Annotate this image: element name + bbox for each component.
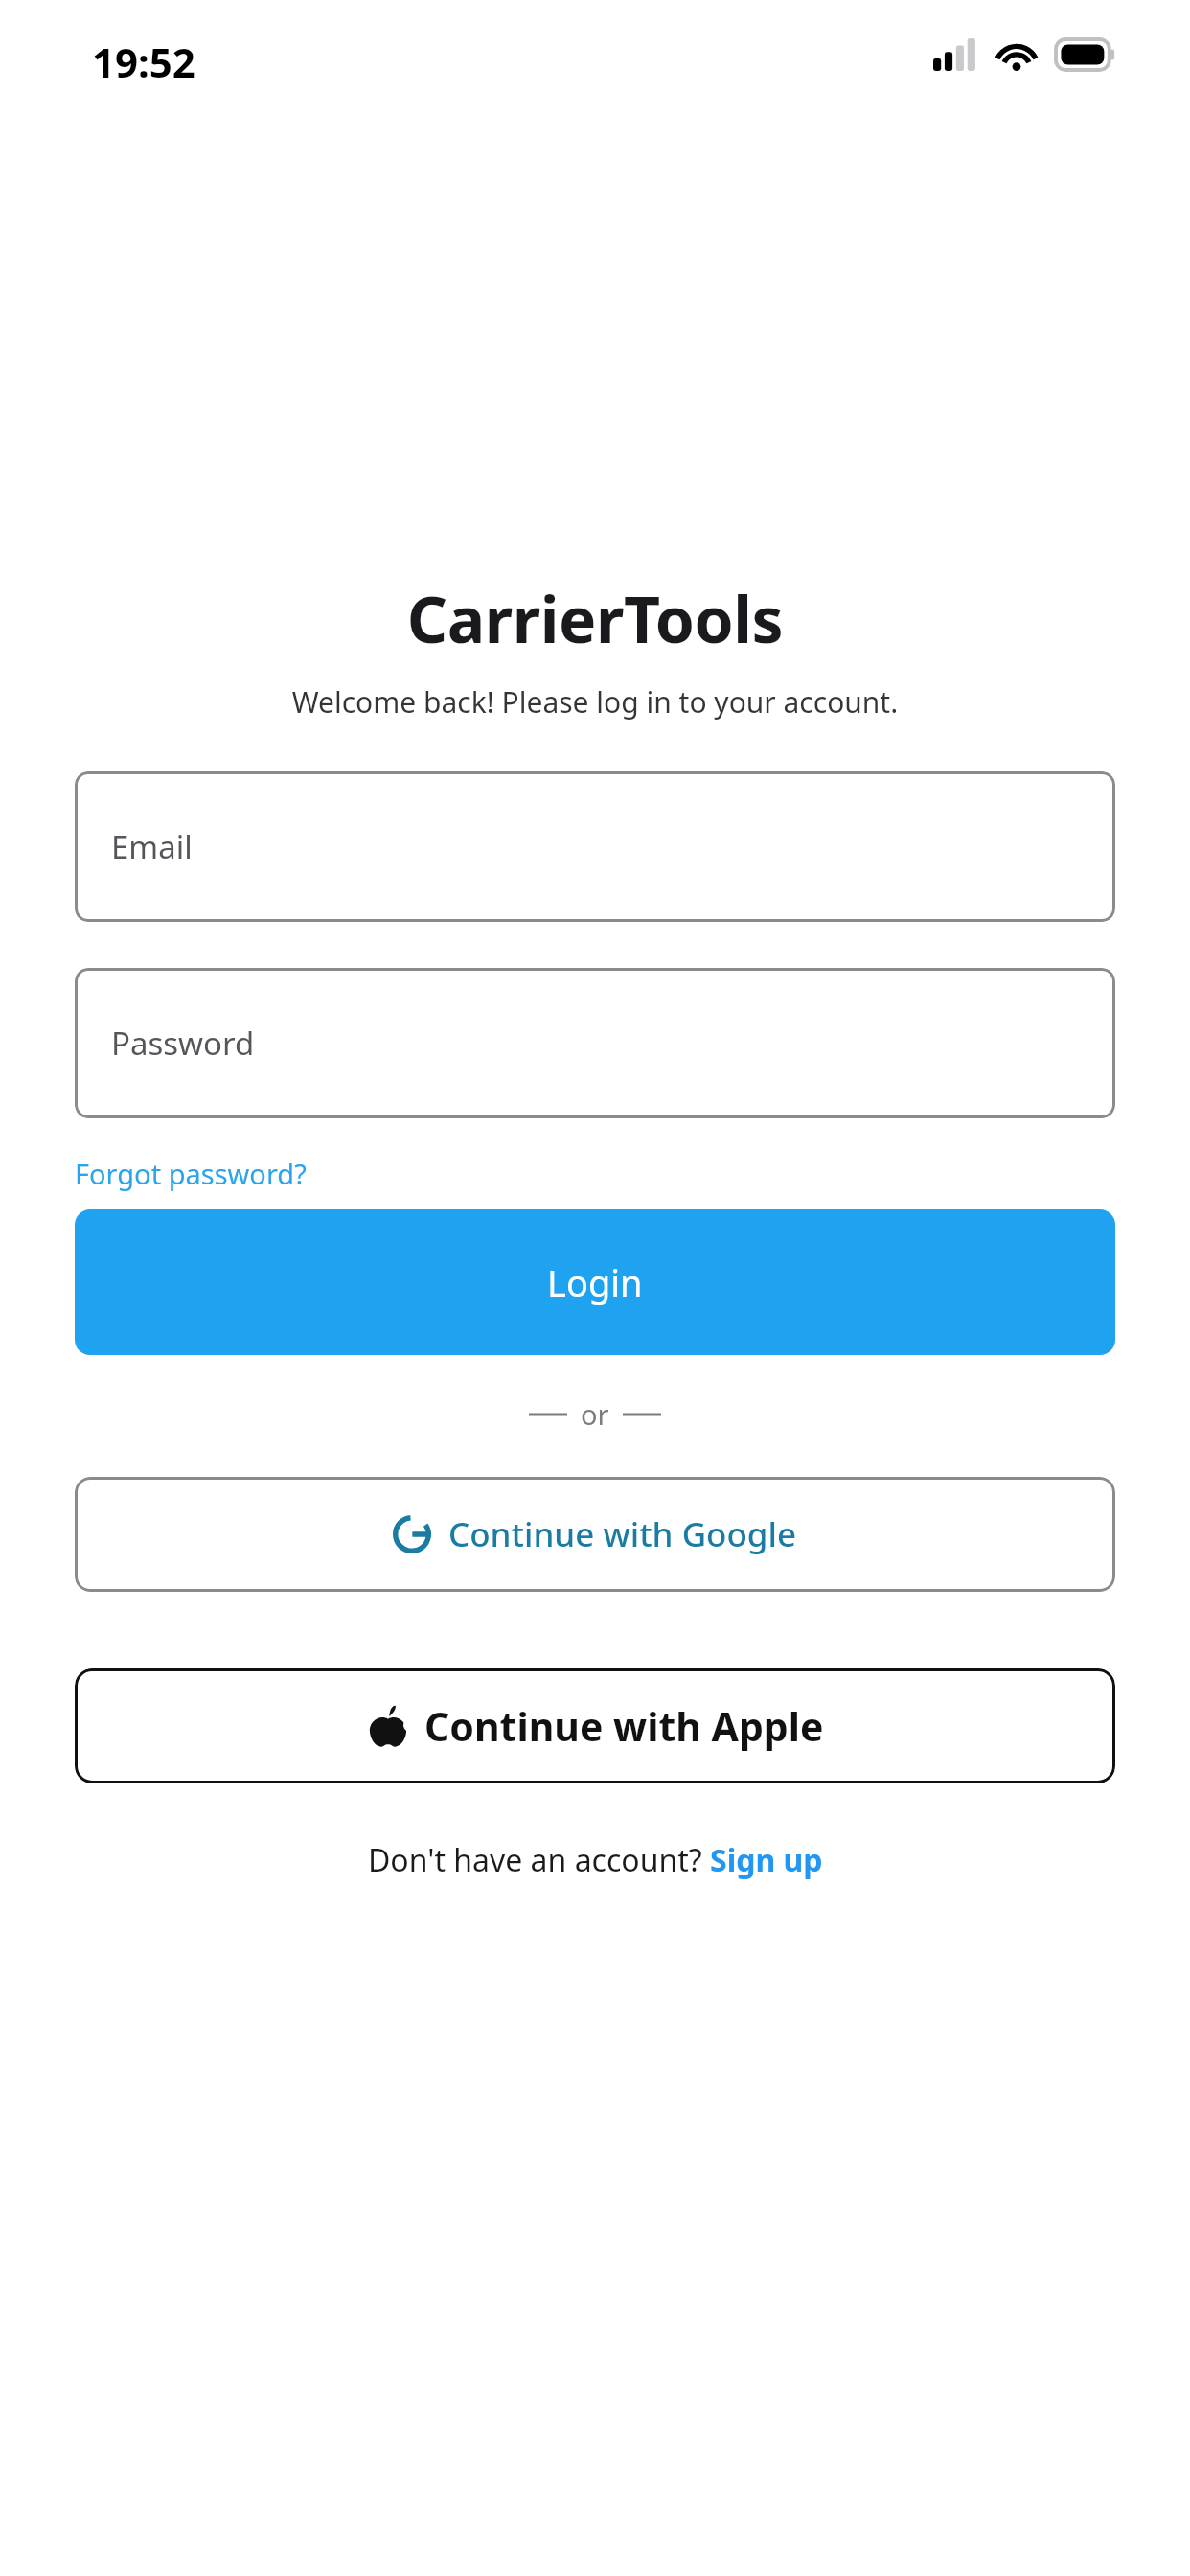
button[interactable]: Continue with Google <box>75 1477 1115 1592</box>
staticText: Don't have an account? <box>368 1839 710 1881</box>
button[interactable]: Email <box>75 771 1115 922</box>
staticText: Password <box>111 1022 255 1065</box>
staticText: Sign up <box>710 1839 823 1881</box>
staticText: Continue with Google <box>448 1511 797 1557</box>
staticText: Continue with Apple <box>424 1699 824 1753</box>
staticText: Welcome back! Please log in to your acco… <box>0 682 1190 722</box>
staticText: 19:52 <box>92 34 195 89</box>
button[interactable]: Password <box>75 968 1115 1118</box>
staticText: Login <box>547 1257 643 1307</box>
button[interactable]: Forgot password? <box>75 1153 307 1194</box>
staticText: Email <box>111 825 193 868</box>
staticText: or <box>581 1395 609 1433</box>
staticText: Forgot password? <box>75 1155 307 1192</box>
staticText: CarrierTools <box>0 575 1190 661</box>
button[interactable]: Login <box>75 1209 1115 1355</box>
button[interactable]: Sign up <box>710 1839 823 1881</box>
button[interactable]: Continue with Apple <box>75 1668 1115 1783</box>
